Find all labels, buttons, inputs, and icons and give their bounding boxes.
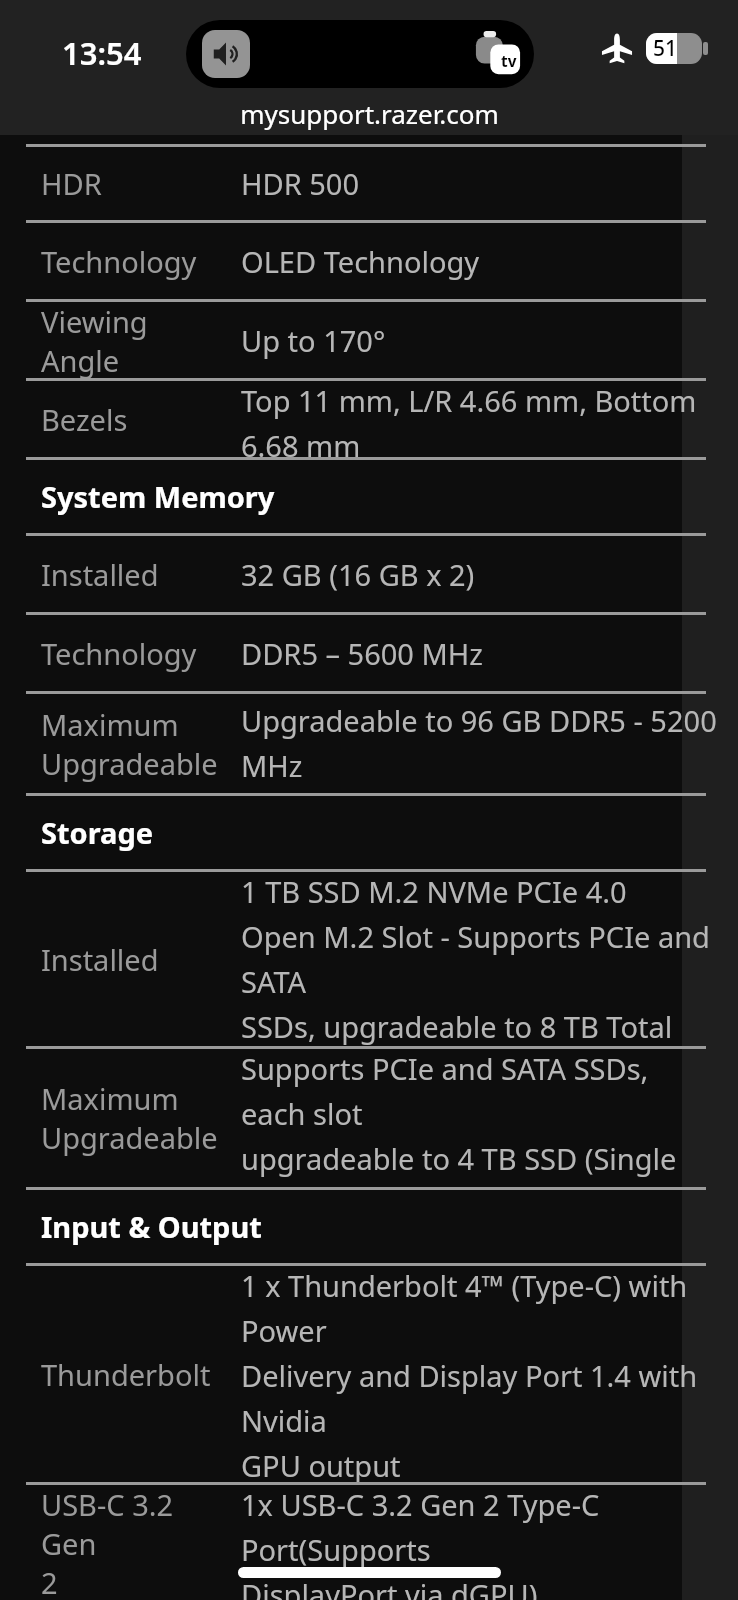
staticText: tv [501, 51, 517, 72]
button[interactable]: Maximum Upgradeable [0, 1049, 738, 1187]
button[interactable]: mysupport.razer.com [240, 96, 499, 131]
staticText: 13:54 [62, 32, 142, 74]
staticText: DDR5 – 5600 MHz [241, 634, 483, 673]
button[interactable]: HDR [0, 147, 738, 220]
button[interactable]: Viewing Angle [0, 302, 738, 378]
button[interactable]: Thunderbolt [0, 1266, 738, 1482]
button[interactable]: Technology [0, 223, 738, 299]
button[interactable]: Maximum Upgradeable [0, 694, 738, 793]
staticText: Input & Output [41, 1207, 262, 1246]
staticText: Maximum Upgradeable [41, 705, 218, 783]
staticText: 1 TB SSD M.2 NVMe PCIe 4.0 Open M.2 Slot… [241, 872, 720, 1046]
staticText: System Memory [41, 477, 275, 516]
button[interactable]: Bezels [0, 381, 738, 457]
button[interactable]: Storage [0, 796, 738, 869]
staticText: Supports PCIe and SATA SSDs, each slot u… [241, 1049, 720, 1187]
staticText: Top 11 mm, L/R 4.66 mm, Bottom 6.68 mm [241, 381, 720, 457]
other: Battery 51 percent [646, 33, 708, 64]
button[interactable]: Installed [0, 872, 738, 1046]
staticText: 32 GB (16 GB x 2) [241, 555, 475, 594]
other: Airplane mode [601, 32, 633, 64]
staticText: Installed [41, 940, 159, 979]
staticText: 51 [653, 34, 678, 63]
staticText: Upgradeable to 96 GB DDR5 - 5200 MHz [241, 701, 720, 786]
button[interactable]: System Memory [0, 460, 738, 533]
staticText: Thunderbolt [41, 1355, 211, 1394]
button[interactable]: Dynamic Island activities [186, 20, 534, 88]
staticText: OLED Technology [241, 242, 480, 281]
button[interactable]: Installed [0, 536, 738, 612]
button[interactable]: Input & Output [0, 1190, 738, 1263]
staticText: Up to 170° [241, 321, 386, 360]
staticText: HDR 500 [241, 164, 360, 203]
button[interactable]: Technology [0, 615, 738, 691]
staticText: 1x USB-C 3.2 Gen 2 Type-C Port(Supports … [241, 1485, 720, 1600]
staticText: Maximum Upgradeable [41, 1079, 218, 1157]
button[interactable]: USB-C 3.2 Gen 2 [0, 1485, 738, 1600]
staticText: HDR [41, 164, 102, 203]
staticText: USB-C 3.2 Gen 2 [41, 1485, 231, 1600]
staticText: Technology [41, 242, 197, 281]
staticText: Storage [41, 813, 154, 852]
staticText: Technology [41, 634, 197, 673]
staticText: Installed [41, 555, 159, 594]
staticText: 1 x Thunderbolt 4™ (Type-C) with Power D… [241, 1266, 720, 1482]
staticText: Bezels [41, 400, 128, 439]
staticText: Viewing Angle [41, 302, 231, 378]
